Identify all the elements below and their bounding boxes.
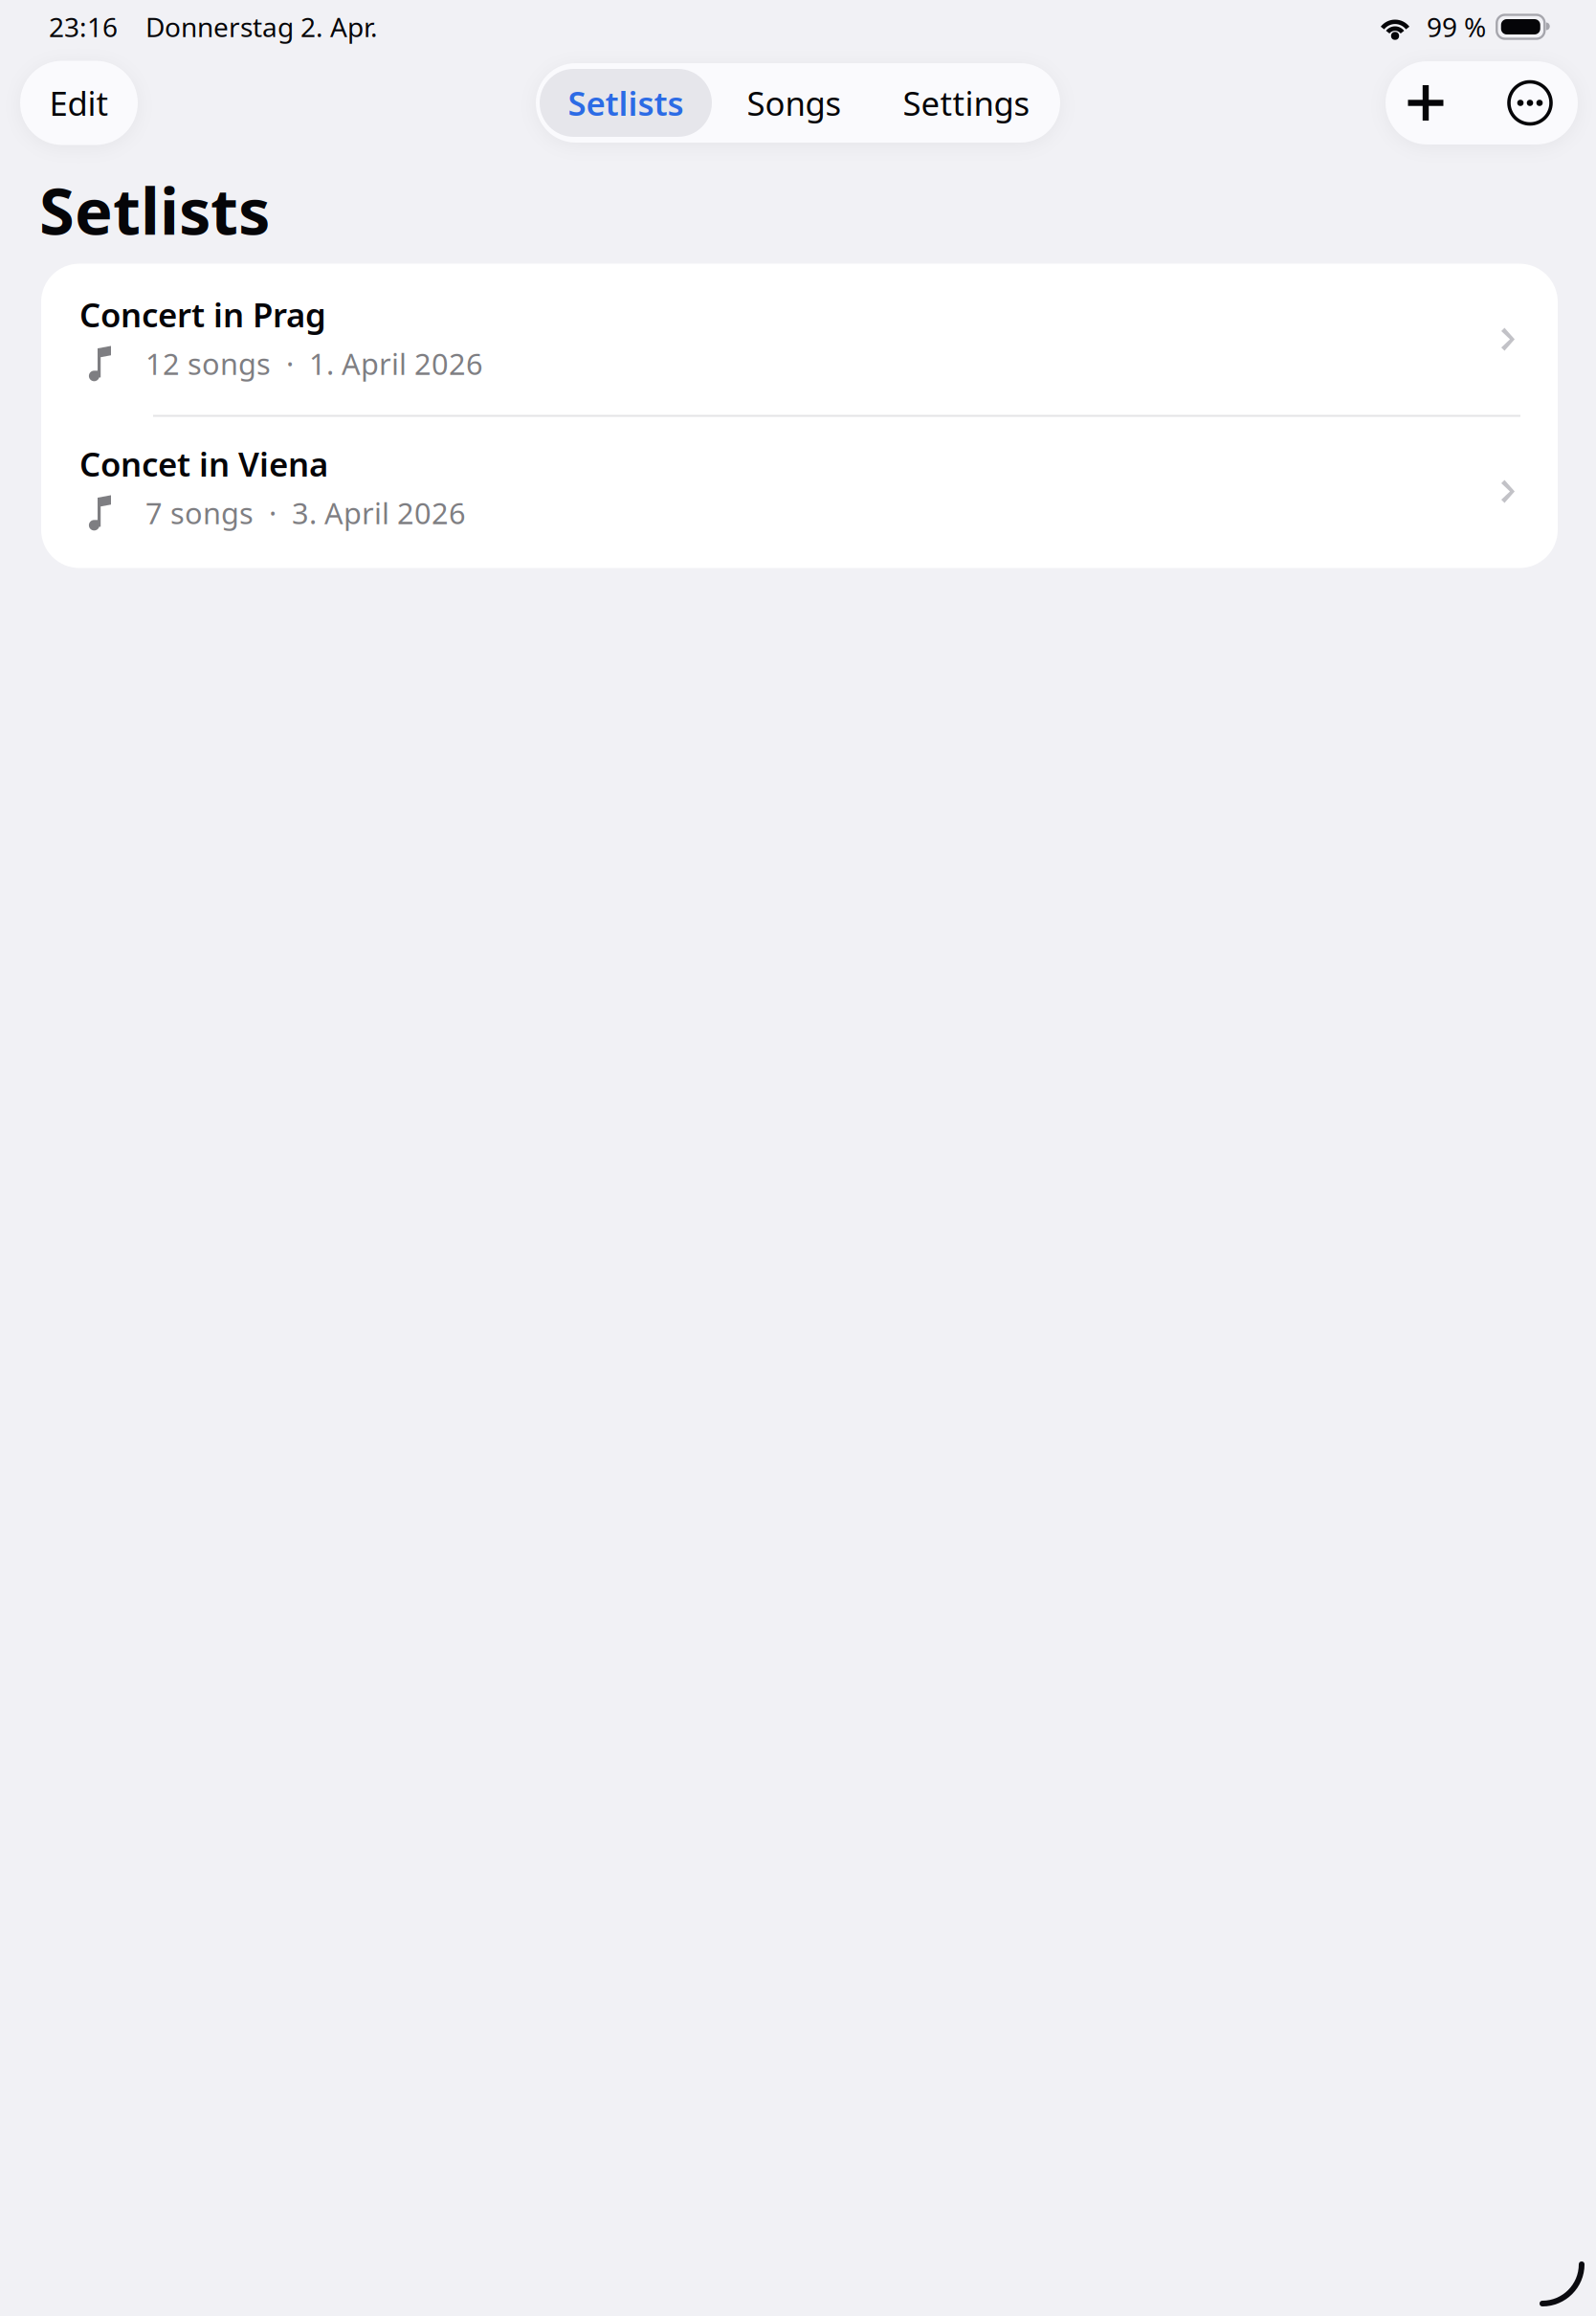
button[interactable]: More: [1496, 61, 1563, 145]
button[interactable]: Edit: [20, 61, 138, 145]
staticText: 23:16: [49, 9, 118, 45]
button[interactable]: Songs: [712, 71, 876, 134]
staticText: 12 songs: [145, 344, 271, 383]
staticText: Concet in Viena: [79, 442, 328, 486]
staticText: Donnerstag 2. Apr.: [145, 9, 378, 45]
staticText: Concert in Prag: [79, 292, 326, 336]
staticText: 99 %: [1427, 9, 1486, 45]
staticText: Settings: [903, 81, 1030, 125]
staticText: 1. April 2026: [309, 344, 483, 383]
button[interactable]: Setlists: [540, 69, 712, 137]
button[interactable]: Settings: [876, 71, 1056, 134]
staticText: Setlists: [39, 167, 270, 252]
staticText: 3. April 2026: [292, 493, 466, 532]
staticText: Edit: [49, 81, 109, 125]
staticText: Songs: [747, 81, 842, 125]
button[interactable]: Concert in Prag: [41, 264, 1558, 415]
staticText: Setlists: [568, 81, 684, 125]
button[interactable]: Concet in Viena: [41, 417, 1558, 568]
staticText: ·: [286, 344, 294, 383]
staticText: ·: [269, 493, 277, 532]
button[interactable]: Add: [1396, 61, 1455, 145]
staticText: 7 songs: [145, 493, 254, 532]
